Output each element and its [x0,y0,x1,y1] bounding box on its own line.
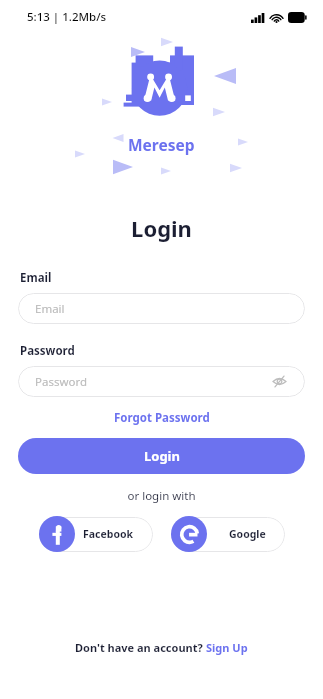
staticText: Google [229,527,266,541]
button[interactable]: Google [171,516,285,552]
staticText: Password [35,374,271,390]
staticText: Meresep [128,134,195,155]
staticText: Password [20,343,75,359]
staticText: Don't have an account? [75,640,206,655]
staticText: Facebook [83,527,134,541]
staticText: Sign Up [206,640,248,655]
staticText: or login with [0,488,323,504]
staticText: Login [0,213,323,243]
staticText: Forgot Password [114,410,210,426]
button[interactable]: Email [18,293,305,324]
staticText: Email [20,270,52,286]
button[interactable]: Facebook [39,516,153,552]
staticText: Email [35,301,288,317]
button[interactable]: Sign Up [206,640,248,655]
staticText: Login [144,447,180,465]
button[interactable]: Password [18,366,305,397]
button[interactable]: Show password [271,373,288,390]
staticText: 5:13 | 1.2Mb/s [27,9,107,25]
button[interactable]: Login [18,438,305,474]
button[interactable]: Forgot Password [0,410,323,426]
